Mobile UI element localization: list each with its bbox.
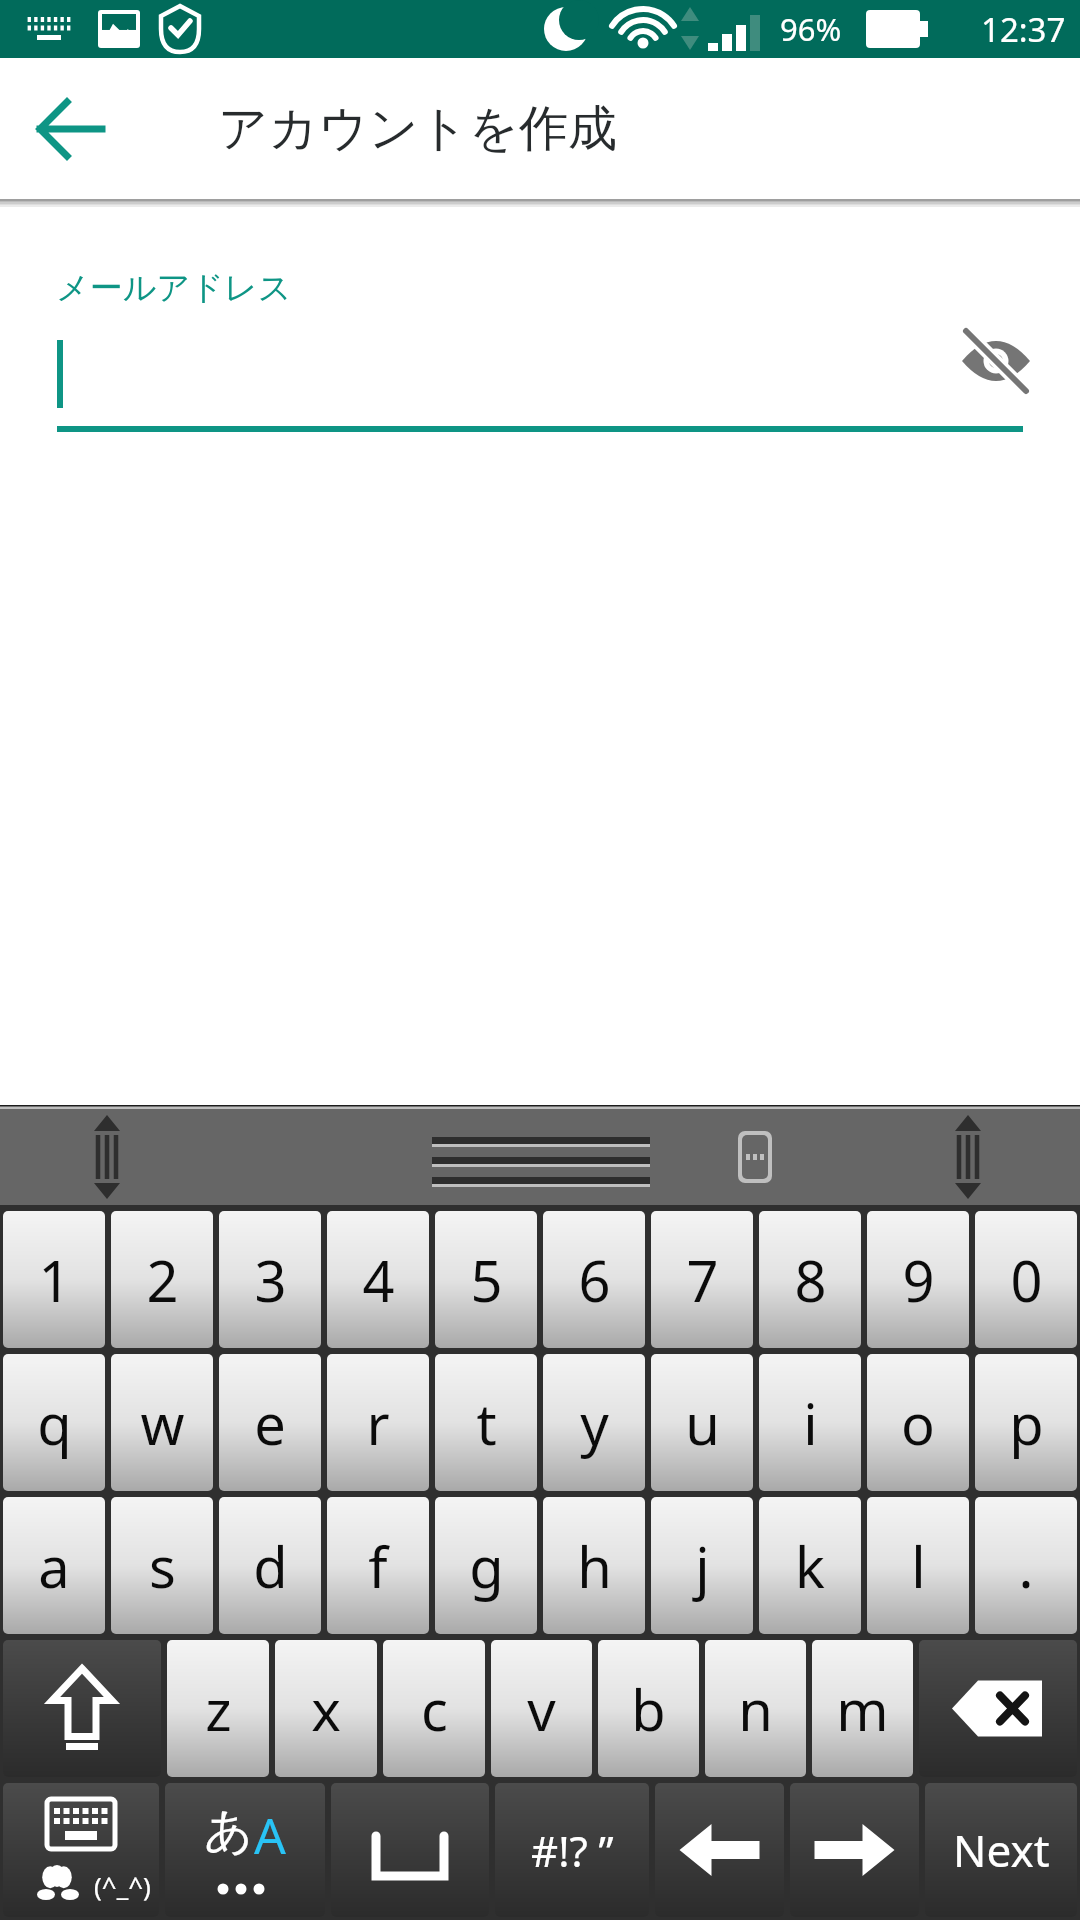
staticText: p [1009, 1385, 1044, 1461]
staticText: z [205, 1671, 232, 1747]
button[interactable]: p [975, 1354, 1077, 1491]
staticText: 2 [146, 1242, 179, 1318]
button[interactable]: i [759, 1354, 861, 1491]
staticText: 7 [686, 1242, 719, 1318]
staticText: j [695, 1528, 710, 1604]
staticText: u [685, 1385, 720, 1461]
button[interactable]: v [491, 1640, 592, 1777]
staticText: Next [953, 1820, 1050, 1880]
staticText: v [527, 1671, 556, 1747]
button[interactable]: q [3, 1354, 105, 1491]
staticText: 5 [470, 1242, 503, 1318]
button[interactable]: o [867, 1354, 969, 1491]
button[interactable]: 6 [543, 1211, 645, 1348]
button[interactable]: 2 [111, 1211, 213, 1348]
button[interactable]: f [327, 1497, 429, 1634]
button[interactable]: z [167, 1640, 269, 1777]
staticText: m [836, 1671, 889, 1747]
button[interactable]: . [975, 1497, 1077, 1634]
button[interactable]: s [111, 1497, 213, 1634]
button[interactable]: Next [925, 1783, 1077, 1917]
button[interactable]: 1 [3, 1211, 105, 1348]
staticText: b [631, 1671, 666, 1747]
staticText: #!? ” [531, 1822, 614, 1879]
staticText: 9 [902, 1242, 935, 1318]
staticText: o [901, 1385, 935, 1461]
button[interactable]: Show password [948, 313, 1044, 409]
staticText: t [476, 1385, 497, 1461]
staticText: 8 [794, 1242, 827, 1318]
staticText: k [795, 1528, 825, 1604]
staticText: n [738, 1671, 773, 1747]
staticText: (^_^) [94, 1868, 151, 1903]
staticText: メールアドレス [56, 267, 292, 309]
button[interactable]: y [543, 1354, 645, 1491]
button[interactable]: 9 [867, 1211, 969, 1348]
button[interactable]: Cursor right [790, 1783, 919, 1917]
button[interactable]: x [275, 1640, 377, 1777]
button[interactable]: Change input mode [165, 1783, 325, 1917]
staticText: あ [204, 1801, 254, 1861]
button[interactable]: 3 [219, 1211, 321, 1348]
staticText: h [577, 1528, 612, 1604]
staticText: x [311, 1671, 341, 1747]
button[interactable]: 7 [651, 1211, 753, 1348]
button[interactable]: t [435, 1354, 537, 1491]
button[interactable]: Symbols [495, 1783, 649, 1917]
staticText: c [421, 1671, 448, 1747]
button[interactable]: c [383, 1640, 485, 1777]
button[interactable]: k [759, 1497, 861, 1634]
button[interactable]: Space [331, 1783, 489, 1917]
button[interactable]: Backspace [919, 1640, 1077, 1777]
button[interactable]: d [219, 1497, 321, 1634]
staticText: 0 [1010, 1242, 1043, 1318]
staticText: アカウントを作成 [218, 98, 617, 160]
button[interactable]: Switch keyboard [3, 1783, 159, 1917]
staticText: 96% [780, 8, 842, 50]
staticText: s [149, 1528, 176, 1604]
button[interactable]: 5 [435, 1211, 537, 1348]
staticText: w [140, 1385, 185, 1461]
button[interactable]: Cursor left [655, 1783, 784, 1917]
button[interactable]: h [543, 1497, 645, 1634]
staticText: . [1018, 1528, 1034, 1604]
staticText: g [469, 1528, 504, 1604]
button[interactable]: l [867, 1497, 969, 1634]
button[interactable]: m [812, 1640, 913, 1777]
button[interactable]: 8 [759, 1211, 861, 1348]
staticText: l [911, 1528, 926, 1604]
staticText: i [803, 1385, 818, 1461]
button[interactable]: Shift [3, 1640, 161, 1777]
button[interactable]: Back [26, 85, 114, 173]
button[interactable]: u [651, 1354, 753, 1491]
staticText: d [253, 1528, 288, 1604]
staticText: 1 [38, 1242, 71, 1318]
staticText: q [37, 1385, 72, 1461]
button[interactable]: j [651, 1497, 753, 1634]
staticText: f [368, 1528, 388, 1604]
button[interactable]: b [598, 1640, 699, 1777]
staticText: 4 [362, 1242, 395, 1318]
staticText: A [254, 1801, 286, 1869]
staticText: y [580, 1385, 609, 1461]
staticText: e [254, 1385, 286, 1461]
staticText: r [366, 1385, 390, 1461]
staticText: 6 [578, 1242, 611, 1318]
button[interactable]: g [435, 1497, 537, 1634]
staticText: a [38, 1528, 70, 1604]
staticText: 3 [254, 1242, 287, 1318]
button[interactable]: n [705, 1640, 806, 1777]
button[interactable]: w [111, 1354, 213, 1491]
button[interactable]: a [3, 1497, 105, 1634]
staticText: 12:37 [981, 7, 1066, 52]
button[interactable]: 4 [327, 1211, 429, 1348]
button[interactable]: e [219, 1354, 321, 1491]
button[interactable]: 0 [975, 1211, 1077, 1348]
button[interactable]: r [327, 1354, 429, 1491]
